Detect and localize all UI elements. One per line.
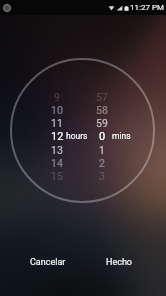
button[interactable]: 0 (87, 128, 117, 144)
staticText: 12 (51, 130, 64, 143)
other: Notification (3, 4, 11, 12)
button[interactable]: 14 (42, 155, 72, 171)
staticText: 11 (51, 117, 63, 129)
staticText: 2 (99, 157, 105, 169)
button[interactable]: Cancelar (22, 254, 73, 270)
staticText: 3 (99, 170, 105, 182)
staticText: 14 (51, 157, 63, 169)
other: Signal (116, 4, 123, 12)
button[interactable]: 1 (87, 142, 117, 158)
button[interactable]: 2 (87, 155, 117, 171)
staticText: 9 (54, 91, 60, 103)
staticText: mins (112, 131, 131, 141)
staticText: 0 (99, 130, 106, 143)
other: Battery (124, 4, 129, 12)
button[interactable]: 9 (42, 89, 72, 105)
staticText: Hecho (106, 257, 132, 268)
staticText: hours (66, 131, 88, 141)
button[interactable]: 3 (87, 168, 117, 184)
staticText: 1 (99, 144, 105, 156)
button[interactable]: 57 (87, 89, 117, 105)
button[interactable]: 59 (87, 115, 117, 131)
staticText: 10 (51, 104, 63, 116)
staticText: 58 (96, 104, 108, 116)
button[interactable]: hours (66, 128, 88, 144)
button[interactable]: mins (112, 128, 131, 144)
staticText: 13 (51, 144, 63, 156)
button[interactable]: 15 (42, 168, 72, 184)
button[interactable]: 12 (42, 128, 72, 144)
staticText: 11:27 PM (130, 3, 164, 12)
other: Wi-Fi (108, 4, 115, 12)
staticText: 59 (96, 117, 108, 129)
staticText: 15 (51, 170, 63, 182)
button[interactable]: 10 (42, 102, 72, 118)
staticText: Cancelar (30, 257, 66, 268)
staticText: 57 (96, 91, 108, 103)
button[interactable]: Hecho (106, 254, 132, 270)
button[interactable]: 13 (42, 142, 72, 158)
button[interactable]: 58 (87, 102, 117, 118)
button[interactable]: 11 (42, 115, 72, 131)
